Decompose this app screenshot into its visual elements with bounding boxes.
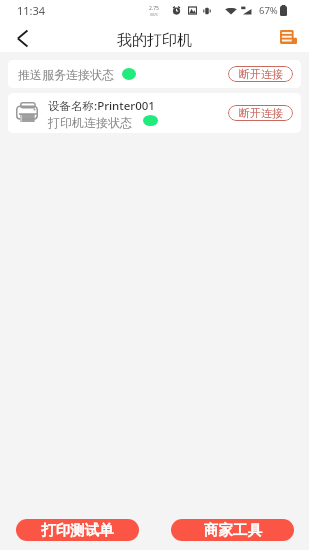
button[interactable]: Orders (271, 21, 309, 52)
staticText: 打印机连接状态 (48, 115, 132, 130)
staticText: 2.75 (149, 5, 159, 12)
staticText: 设备名称:Printer001 (48, 98, 155, 114)
staticText: 商家工具 (204, 521, 262, 539)
button[interactable]: 断开连接 (228, 105, 293, 121)
button[interactable]: 打印测试单 (16, 519, 139, 541)
button[interactable]: Back (0, 21, 45, 52)
staticText: KB/S (150, 12, 158, 17)
button[interactable]: 断开连接 (228, 66, 293, 82)
staticText: 打印测试单 (41, 521, 114, 539)
staticText: 断开连接 (239, 106, 283, 120)
staticText: 断开连接 (239, 67, 283, 81)
staticText: 11:34 (17, 3, 46, 18)
button[interactable]: 推送服务连接状态 (8, 60, 301, 88)
staticText: 67% (259, 4, 278, 17)
button[interactable]: 商家工具 (171, 519, 294, 541)
staticText: 我的打印机 (117, 31, 192, 50)
staticText: 推送服务连接状态 (18, 67, 114, 82)
button[interactable]: 设备名称:Printer001 (8, 93, 301, 133)
